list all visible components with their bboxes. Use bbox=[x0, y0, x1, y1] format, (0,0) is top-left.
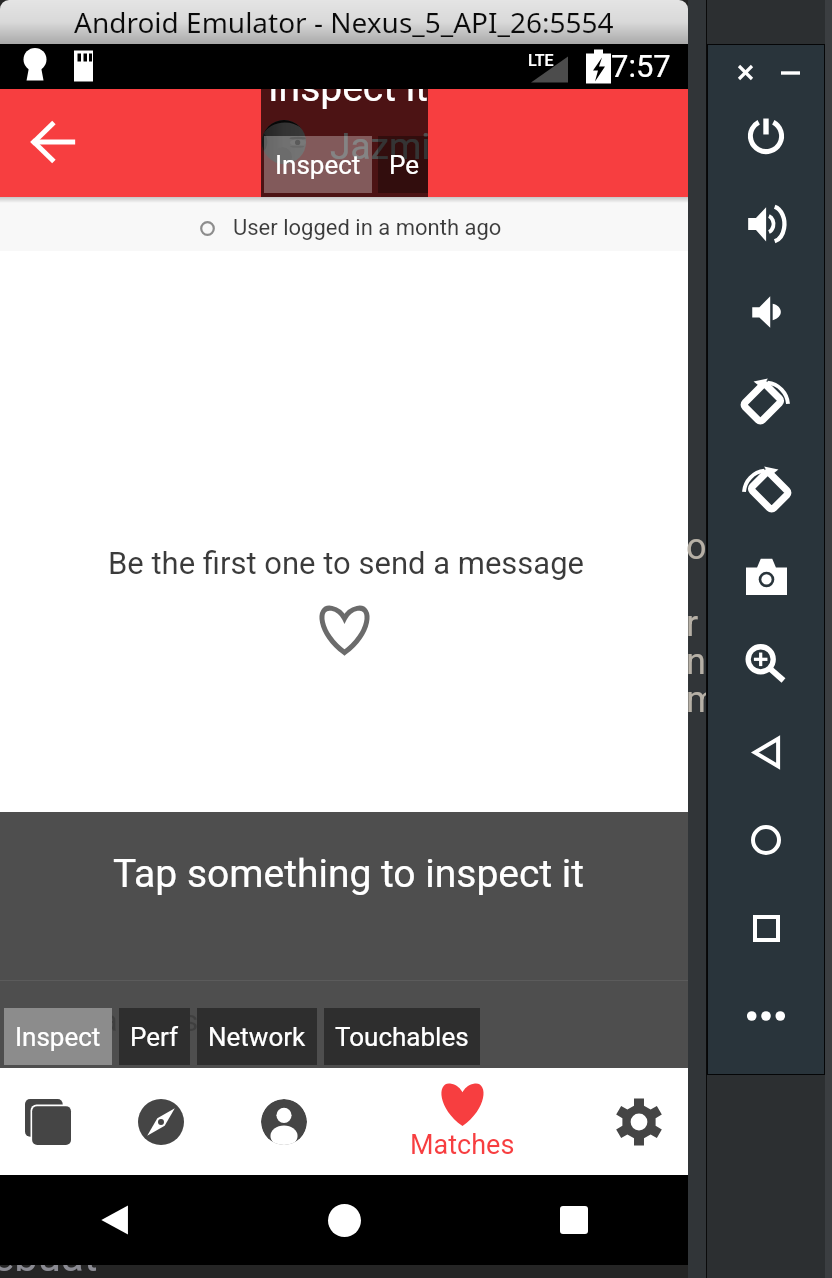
staticText: Perf bbox=[130, 1022, 179, 1052]
staticText: nt bbox=[686, 641, 718, 683]
staticText: Be the first one to send a message bbox=[108, 545, 585, 581]
button[interactable]: Volume down bbox=[708, 268, 824, 356]
staticText: 7:57 bbox=[611, 48, 671, 84]
staticText: Type a message bbox=[30, 1003, 248, 1038]
button[interactable]: More bbox=[708, 972, 824, 1060]
button[interactable]: Rotate left bbox=[708, 356, 824, 444]
button[interactable]: Back bbox=[30, 117, 80, 167]
button[interactable]: Overview bbox=[708, 884, 824, 972]
button[interactable]: Minimize bbox=[770, 53, 810, 93]
button[interactable]: Screenshot bbox=[708, 532, 824, 620]
staticText: ebuat bbox=[0, 1232, 98, 1278]
staticText: Inspect it bbox=[268, 89, 428, 111]
staticText: oi bbox=[686, 526, 716, 568]
staticText: Perf bbox=[389, 150, 420, 180]
staticText: Touchables bbox=[335, 1022, 469, 1052]
staticText: Android Emulator - Nexus_5_API_26:5554 bbox=[74, 3, 614, 41]
button[interactable]: Settings bbox=[574, 1068, 704, 1175]
staticText: r bbox=[686, 603, 699, 645]
button[interactable]: Rotate right bbox=[708, 444, 824, 532]
staticText: Inspect bbox=[275, 150, 361, 180]
staticText: LTE bbox=[528, 51, 554, 70]
staticText: Inspect bbox=[15, 1022, 101, 1052]
staticText: Matches bbox=[410, 1129, 515, 1161]
button[interactable]: Perf bbox=[378, 136, 428, 193]
button[interactable]: Inspect bbox=[4, 1008, 112, 1065]
button[interactable]: Volume up bbox=[708, 180, 824, 268]
button[interactable]: Power bbox=[708, 92, 824, 180]
button[interactable]: Network bbox=[197, 1008, 317, 1065]
button[interactable]: Close bbox=[725, 52, 765, 92]
button[interactable]: Explore bbox=[105, 1068, 217, 1175]
button[interactable]: Profile bbox=[223, 1068, 345, 1175]
button[interactable]: Back bbox=[0, 1175, 230, 1265]
button[interactable]: Back bbox=[708, 708, 824, 796]
button[interactable]: Home bbox=[708, 796, 824, 884]
button[interactable]: Decks bbox=[0, 1068, 96, 1175]
button[interactable]: Matches bbox=[346, 1068, 574, 1175]
button[interactable]: Touchables bbox=[324, 1008, 480, 1065]
staticText: Network bbox=[208, 1022, 306, 1052]
staticText: User logged in a month ago bbox=[233, 215, 502, 241]
button[interactable]: Home bbox=[230, 1175, 459, 1265]
button[interactable]: Perf bbox=[119, 1008, 190, 1065]
button[interactable]: Inspect bbox=[264, 136, 372, 193]
staticText: Jazmin bbox=[330, 125, 428, 168]
button[interactable]: Zoom bbox=[708, 620, 824, 708]
staticText: Tap something to inspect it bbox=[113, 851, 585, 897]
staticText: m bbox=[686, 679, 718, 721]
button[interactable]: Recents bbox=[459, 1175, 688, 1265]
